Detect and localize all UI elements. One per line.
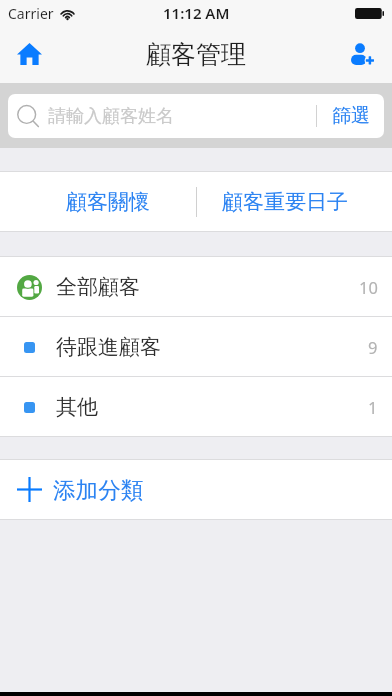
- button[interactable]: Home: [5, 30, 53, 78]
- staticText: 顧客關懷: [66, 189, 150, 215]
- button[interactable]: 全部顧客: [0, 257, 392, 316]
- staticText: 添加分類: [53, 476, 144, 504]
- staticText: 篩選: [332, 104, 370, 128]
- staticText: 請輸入顧客姓名: [48, 105, 174, 128]
- button[interactable]: 篩選: [317, 94, 384, 138]
- button[interactable]: 添加分類: [0, 460, 392, 519]
- button[interactable]: 請輸入顧客姓名: [8, 94, 384, 138]
- staticText: 其他: [56, 394, 98, 420]
- button[interactable]: 顧客關懷: [0, 172, 196, 231]
- button[interactable]: 其他: [0, 377, 392, 436]
- staticText: 待跟進顧客: [56, 334, 161, 360]
- staticText: 1: [368, 396, 378, 418]
- button[interactable]: 顧客重要日子: [196, 172, 392, 231]
- staticText: 9: [368, 336, 378, 358]
- staticText: 顧客重要日子: [222, 189, 348, 215]
- button[interactable]: 待跟進顧客: [0, 317, 392, 376]
- staticText: 10: [359, 276, 378, 298]
- staticText: 顧客管理: [146, 39, 246, 70]
- button[interactable]: Add customer: [338, 30, 386, 78]
- staticText: 11:12 AM: [163, 3, 230, 23]
- staticText: Carrier: [8, 4, 54, 23]
- staticText: 全部顧客: [56, 274, 140, 300]
